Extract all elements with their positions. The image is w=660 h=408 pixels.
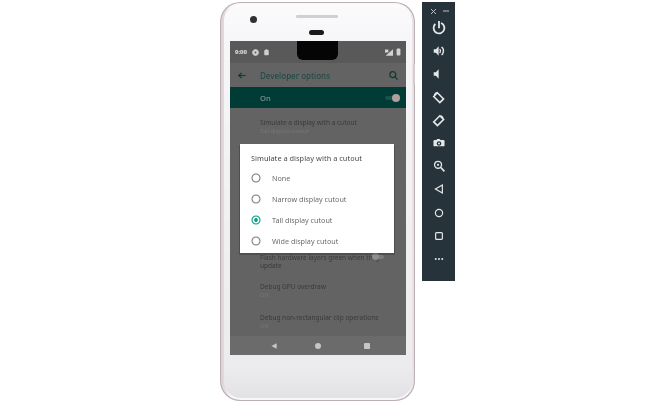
staticText: Off <box>260 291 269 299</box>
staticText: Debug non-rectangular clip operations <box>260 313 379 322</box>
staticText: Window animation scale <box>260 211 335 220</box>
button[interactable]: Rotate left <box>430 88 447 105</box>
button[interactable]: Debug non-rectangular clip operations <box>230 310 406 336</box>
button[interactable]: Volume down <box>430 65 447 82</box>
button[interactable]: Narrow display cutout <box>240 188 394 209</box>
button[interactable]: Minimize <box>440 5 452 17</box>
staticText: Show layout bounds <box>260 149 322 158</box>
staticText: Narrow display cutout <box>272 194 347 204</box>
staticText: Debug GPU overdraw <box>260 282 326 291</box>
button[interactable]: Recents <box>352 336 382 355</box>
button[interactable]: None <box>240 167 394 188</box>
staticText: 9:00 <box>235 48 247 56</box>
button[interactable]: Window animation scale <box>230 208 406 250</box>
button[interactable]: Tall display cutout <box>240 209 394 230</box>
button[interactable]: Close <box>427 5 439 17</box>
button[interactable]: Force RTL layout direction <box>230 177 406 208</box>
staticText: Simulate a display with a cutout <box>251 153 362 163</box>
button[interactable]: More <box>430 250 447 267</box>
staticText: Developer options <box>260 70 331 81</box>
staticText: Wide display cutout <box>272 236 339 246</box>
staticText: None <box>272 173 291 183</box>
staticText: Off <box>260 158 269 166</box>
button[interactable]: On <box>230 87 406 108</box>
staticText: Tall display cutout <box>272 215 333 225</box>
button[interactable]: Zoom <box>430 157 447 174</box>
button[interactable]: Show layout bounds <box>230 146 406 177</box>
button[interactable]: Wide display cutout <box>240 230 394 251</box>
button[interactable]: Home <box>303 336 333 355</box>
staticText: Simulate a display with a cutout <box>260 118 357 127</box>
staticText: Off <box>260 322 269 330</box>
button[interactable]: Debug GPU overdraw <box>230 279 406 310</box>
staticText: On <box>260 93 271 103</box>
button[interactable]: Rotate right <box>430 111 447 128</box>
button[interactable]: Back <box>235 68 249 82</box>
button[interactable]: Back <box>430 180 447 197</box>
button[interactable]: Overview <box>430 227 447 244</box>
button[interactable]: Power <box>430 19 447 36</box>
staticText: Tall display cutout <box>260 127 309 135</box>
button[interactable]: Back <box>259 336 289 355</box>
button[interactable]: Search <box>386 68 400 82</box>
button[interactable]: Volume up <box>430 42 447 59</box>
staticText: Force RTL layout direction <box>260 180 339 189</box>
staticText: Flash hardware layers green when they up… <box>260 253 386 270</box>
button[interactable]: Flash hardware layers green when they up… <box>230 250 406 279</box>
button[interactable]: Home <box>430 204 447 221</box>
button[interactable]: Screenshot <box>430 134 447 151</box>
button[interactable]: Simulate a display with a cutout <box>230 115 406 146</box>
staticText: Animation off <box>260 220 298 228</box>
